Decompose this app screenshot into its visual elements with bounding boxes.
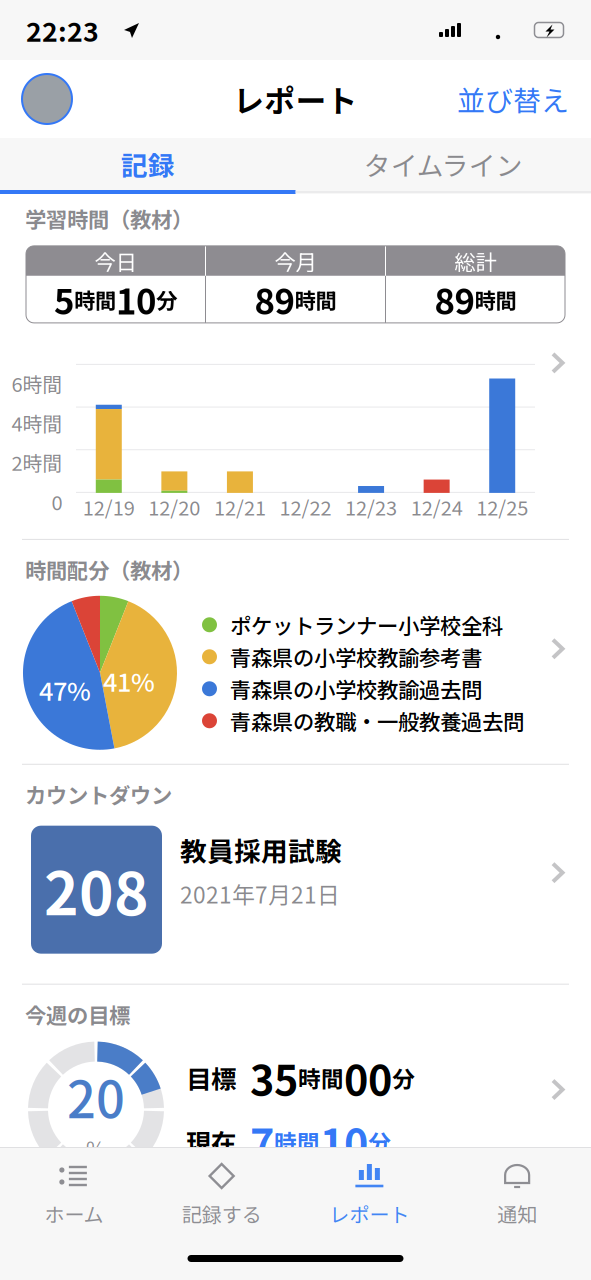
staticText: 時間 [474,284,516,315]
button[interactable]: タイムライン [295,138,591,190]
staticText: 時間 [298,1061,344,1094]
staticText: 35 [250,1048,298,1108]
staticText: 青森県の教職・一般教養過去問 [230,705,524,736]
staticText: 20 [67,1059,125,1133]
staticText: 教員採用試験 [180,831,342,869]
staticText: 時間 [294,284,336,315]
staticText: 89 [434,274,474,324]
staticText: 208 [44,847,149,932]
staticText: 青森県の小学校教諭過去問 [230,673,482,704]
button[interactable]: 学習時間の詳細 [535,364,589,521]
button[interactable]: 記録する [148,1148,296,1234]
staticText: 10 [116,274,156,324]
staticText: 12/20 [148,492,200,521]
staticText: 6時間 [11,369,62,398]
staticText: 12/24 [411,492,463,521]
staticText: 分 [392,1061,415,1094]
staticText: 10 [320,1112,368,1171]
staticText: レポート [329,1199,409,1228]
staticText: 47% [39,671,91,708]
staticText: 学習時間（教材） [25,203,193,234]
staticText: % [86,1133,106,1164]
button[interactable]: 並び替え [457,79,569,119]
staticText: 今週の目標 [25,999,130,1030]
button[interactable]: 208 [0,826,591,954]
staticText: ホーム [44,1199,103,1228]
staticText: 現在 [186,1123,236,1160]
staticText: 時間 [74,284,116,315]
staticText: 並び替え [457,79,569,119]
button[interactable]: 時間配分の詳細 [535,595,589,751]
staticText: 22:23 [26,11,99,49]
button[interactable]: レポート [295,1148,443,1234]
button[interactable]: 20 [0,1042,591,1178]
staticText: 12/23 [345,492,397,521]
staticText: 12/21 [214,492,266,521]
staticText: 総計 [454,245,496,276]
staticText: 分 [368,1125,391,1158]
staticText: 12/25 [476,492,528,521]
staticText: 89 [254,274,294,324]
staticText: 2時間 [11,448,62,477]
staticText: タイムライン [364,145,523,183]
button[interactable]: 記録 [0,138,295,190]
staticText: 今月 [274,245,316,276]
staticText: 12/19 [83,492,135,521]
staticText: 青森県の小学校教諭参考書 [230,641,482,672]
staticText: 0 [51,487,62,516]
staticText: 7 [250,1112,274,1171]
staticText: 記録 [121,145,175,183]
staticText: 12/22 [279,492,331,521]
staticText: カウントダウン [25,779,172,810]
staticText: 2021年7月21日 [180,877,340,910]
staticText: レポート [233,77,357,121]
staticText: 41% [103,662,155,699]
staticText: 4時間 [11,408,62,437]
button[interactable]: Profile [22,74,72,124]
staticText: ポケットランナー小学校全科 [230,609,503,640]
button[interactable]: ホーム [0,1148,148,1234]
staticText: 今日 [94,245,136,276]
staticText: 分 [156,284,177,315]
button[interactable]: 通知 [443,1148,591,1234]
staticText: 通知 [497,1199,537,1228]
staticText: 目標 [186,1059,236,1096]
staticText: 00 [344,1048,392,1108]
staticText: 時間 [274,1125,320,1158]
staticText: 時間配分（教材） [25,554,193,585]
staticText: 記録する [182,1199,262,1228]
staticText: 5 [54,274,74,324]
